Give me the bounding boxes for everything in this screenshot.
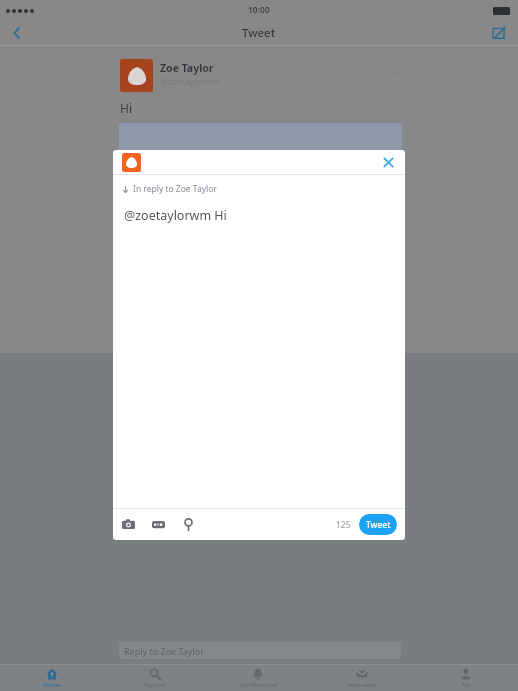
button[interactable]: Zoe Taylor profile photo	[120, 59, 153, 92]
staticText: Home	[43, 681, 61, 689]
button[interactable]: Me	[414, 665, 518, 691]
staticText: Reply to Zoe Taylor	[124, 645, 204, 657]
staticText: Tweet	[366, 519, 391, 531]
button[interactable]: Tweet	[359, 514, 397, 535]
button[interactable]: Back	[0, 21, 34, 45]
button[interactable]: Add GIF	[149, 515, 168, 534]
button[interactable]: Compose new Tweet	[484, 21, 514, 45]
button[interactable]: Reply to Zoe Taylor	[119, 642, 401, 659]
staticText: In reply to Zoe Taylor	[133, 183, 217, 195]
button[interactable]: Your profile photo	[122, 153, 141, 172]
staticText: Hi	[120, 100, 132, 116]
button[interactable]: Home	[0, 665, 103, 691]
staticText: 125	[336, 519, 351, 531]
staticText: 10:00	[248, 4, 270, 16]
staticText: Messages	[348, 681, 377, 689]
staticText: Explore	[144, 681, 166, 689]
button[interactable]	[119, 123, 402, 353]
button[interactable]: Add photo	[119, 515, 138, 534]
button[interactable]: Messages	[310, 665, 414, 691]
staticText: @zoetaylorwm	[160, 76, 220, 88]
staticText: @zoetaylorwm Hi	[124, 207, 227, 224]
staticText: Zoe Taylor	[160, 61, 214, 75]
staticText: Tweet	[242, 25, 276, 41]
staticText: Notifications	[240, 681, 277, 689]
button[interactable]: Add location	[179, 515, 198, 534]
button[interactable]: Close	[377, 151, 399, 173]
staticText: Me	[462, 681, 471, 689]
button[interactable]: Explore	[103, 665, 206, 691]
button[interactable]: Notifications	[206, 665, 310, 691]
